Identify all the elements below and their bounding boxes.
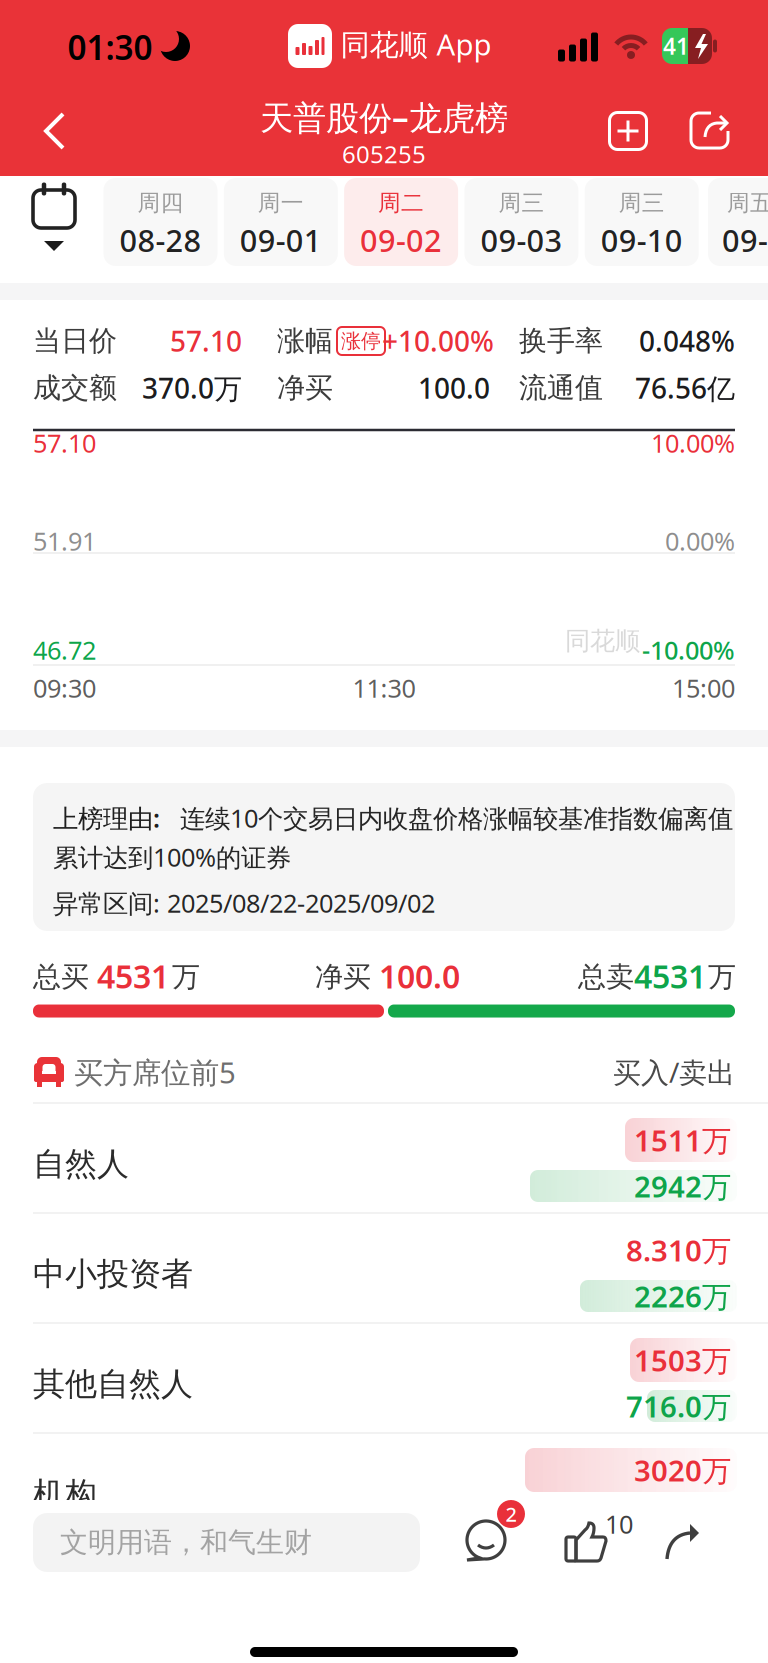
- button[interactable]: Share: [684, 104, 738, 158]
- button[interactable]: 周一: [224, 178, 338, 266]
- staticText: 涨幅: [277, 324, 333, 358]
- staticText: 中小投资者: [33, 1254, 193, 1294]
- staticText: 涨停: [341, 329, 381, 353]
- staticText: 累计达到100%的证券: [53, 840, 291, 874]
- staticText: 0.048%: [639, 322, 735, 360]
- staticText: +10.00%: [382, 322, 494, 360]
- staticText: 同花顺: [565, 625, 640, 656]
- staticText: 总卖: [578, 960, 634, 994]
- staticText: 周三: [619, 189, 665, 217]
- button[interactable]: Comments: [458, 1507, 526, 1567]
- staticText: 净买: [277, 371, 333, 405]
- button[interactable]: Share: [658, 1513, 714, 1569]
- button[interactable]: 周二: [344, 178, 458, 266]
- staticText: 2942万: [634, 1166, 731, 1205]
- staticText: 自然人: [33, 1144, 129, 1184]
- staticText: 周五: [727, 189, 768, 217]
- staticText: 46.72: [33, 633, 96, 667]
- staticText: 100.0: [379, 955, 460, 997]
- staticText: 周一: [258, 189, 304, 217]
- staticText: 0.00%: [665, 524, 735, 558]
- button[interactable]: 周三: [585, 178, 699, 266]
- button[interactable]: 周三: [464, 178, 578, 266]
- staticText: 09:30: [33, 671, 96, 705]
- staticText: 15:00: [672, 671, 735, 705]
- staticText: 100.0: [418, 369, 490, 407]
- staticText: 机构: [33, 1474, 97, 1514]
- staticText: 08-28: [119, 220, 201, 260]
- staticText: 09-03: [480, 220, 562, 260]
- staticText: 买入/卖出: [613, 1053, 735, 1091]
- staticText: 09-01: [240, 220, 322, 260]
- button[interactable]: Write a comment: [33, 1513, 420, 1572]
- staticText: 2226万: [634, 1276, 731, 1315]
- staticText: 买方席位前5: [74, 1052, 236, 1091]
- button[interactable]: Back: [30, 103, 80, 159]
- staticText: 8.310万: [626, 1230, 731, 1269]
- staticText: 11:30: [352, 671, 415, 705]
- staticText: 10.00%: [651, 426, 735, 460]
- staticText: 605255: [342, 138, 426, 170]
- staticText: 周四: [137, 189, 183, 217]
- staticText: 09-10: [601, 220, 683, 260]
- staticText: 716.0万: [626, 1386, 731, 1425]
- staticText: 连续10个交易日内收盘价格涨幅较基准指数偏离值: [180, 801, 733, 835]
- staticText: 同花顺 App: [340, 24, 491, 63]
- staticText: 51.91: [33, 524, 96, 558]
- staticText: 上榜理由:: [53, 801, 160, 835]
- staticText: 天普股份–龙虎榜: [260, 95, 508, 139]
- staticText: 成交额: [33, 371, 117, 405]
- staticText: 其他自然人: [33, 1364, 193, 1404]
- staticText: 万: [172, 960, 200, 994]
- staticText: 当日价: [33, 324, 117, 358]
- button[interactable]: Like: [556, 1506, 628, 1568]
- button[interactable]: Pick date: [27, 180, 81, 256]
- staticText: 2: [505, 1501, 516, 1527]
- staticText: 57.10: [170, 322, 242, 360]
- staticText: 41: [663, 31, 689, 61]
- staticText: 3020万: [634, 1450, 731, 1489]
- staticText: 09-02: [360, 220, 442, 260]
- staticText: 流通值: [519, 371, 603, 405]
- staticText: 4531: [634, 955, 706, 997]
- staticText: 异常区间: 2025/08/22-2025/09/02: [53, 886, 435, 920]
- button[interactable]: Add to watchlist: [601, 104, 655, 158]
- staticText: -10.00%: [642, 633, 735, 667]
- staticText: 4531: [97, 955, 169, 997]
- staticText: 370.0万: [142, 369, 242, 407]
- staticText: 周三: [498, 189, 544, 217]
- staticText: 01:30: [67, 25, 152, 69]
- staticText: 万: [708, 960, 736, 994]
- staticText: 76.56亿: [635, 369, 735, 407]
- staticText: 换手率: [519, 324, 603, 358]
- staticText: 总买: [33, 960, 89, 994]
- staticText: 57.10: [33, 426, 96, 460]
- staticText: 1511万: [634, 1120, 731, 1159]
- staticText: 周二: [378, 189, 424, 217]
- staticText: 10: [605, 1507, 633, 1541]
- staticText: 净买: [315, 960, 371, 994]
- button[interactable]: 周四: [103, 178, 217, 266]
- staticText: 文明用语，和气生财: [60, 1525, 312, 1560]
- staticText: 09-12: [722, 220, 768, 260]
- staticText: 1503万: [634, 1340, 731, 1379]
